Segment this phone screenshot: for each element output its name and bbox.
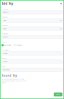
button[interactable]: Close [60,2,62,5]
staticText: Travellers [2,49,10,51]
button[interactable]: One way [14,44,22,46]
staticText: Add Trip [2,2,14,5]
staticText: One way [16,44,22,46]
staticText: Beach trip [3,69,10,71]
staticText: Round Trip [2,74,18,77]
button[interactable]: Round trip [2,44,11,46]
staticText: Trip type [2,41,8,43]
staticText: Save [56,94,60,95]
staticText: Destination [2,33,9,35]
staticText: $2,400 [3,61,8,62]
staticText: Notes [2,66,6,68]
staticText: Budget [2,58,7,59]
staticText: End date [2,25,8,26]
staticText: 12 Jun [3,20,7,21]
staticText: Booking both legs together usually keeps… [2,78,27,84]
staticText: Trip name [2,8,9,10]
staticText: 24 Jun [3,28,7,30]
staticText: Bali 2024 [3,11,9,13]
staticText: Round trip [4,44,11,46]
staticText: Lisbon [3,36,8,38]
staticText: Start date [2,16,8,18]
button[interactable]: Save [54,92,62,96]
staticText: 2 adults [3,52,8,54]
